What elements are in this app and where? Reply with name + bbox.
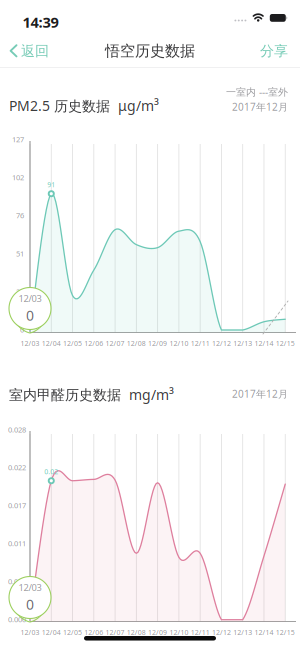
button[interactable]: 返回 xyxy=(0,34,57,68)
staticText: 一室内 ---室外 xyxy=(226,85,288,99)
staticText: 12/07 xyxy=(106,627,125,637)
staticText: 12/08 xyxy=(127,627,146,637)
staticText: 12/06 xyxy=(84,338,103,348)
staticText: 室内甲醛历史数据 mg/m³ xyxy=(9,385,174,404)
staticText: 悟空历史数据 xyxy=(105,41,195,60)
staticText: 0 xyxy=(26,595,34,614)
staticText: 12/14 xyxy=(254,627,273,637)
staticText: 12/05 xyxy=(63,627,82,637)
staticText: 分享 xyxy=(260,42,288,60)
staticText: 12/14 xyxy=(254,338,273,348)
staticText: 0.028 xyxy=(8,424,26,435)
staticText: 25 xyxy=(16,286,24,297)
staticText: 12/08 xyxy=(127,338,146,348)
staticText: 12/15 xyxy=(276,627,295,637)
staticText: 0.000 xyxy=(8,614,26,624)
staticText: 12/03 xyxy=(20,338,39,348)
staticText: 12/13 xyxy=(233,627,252,637)
staticText: 12/10 xyxy=(169,627,188,637)
staticText: 2017年12月 xyxy=(232,387,288,401)
staticText: 91 xyxy=(47,180,55,189)
staticText: 12/03 xyxy=(18,292,41,305)
staticText: 12/12 xyxy=(212,627,231,637)
staticText: 0.011 xyxy=(8,538,26,548)
staticText: 12/10 xyxy=(169,338,188,348)
staticText: 12/04 xyxy=(42,627,61,637)
staticText: 12/05 xyxy=(63,338,82,348)
staticText: 0.02 xyxy=(44,467,58,476)
staticText: 0.017 xyxy=(8,500,26,510)
staticText: 51 xyxy=(16,248,24,259)
staticText: 0 xyxy=(26,306,34,325)
staticText: 12/03 xyxy=(20,627,39,637)
staticText: 12/15 xyxy=(276,338,295,348)
staticText: 返回 xyxy=(21,42,49,60)
staticText: 12/07 xyxy=(106,338,125,348)
staticText: 12/04 xyxy=(42,338,61,348)
staticText: PM2.5 历史数据 μg/m³ xyxy=(9,96,159,115)
staticText: 12/03 xyxy=(18,581,41,594)
staticText: 0.022 xyxy=(8,462,26,473)
staticText: 12/11 xyxy=(191,627,210,637)
staticText: 12/11 xyxy=(191,338,210,348)
staticText: 102 xyxy=(12,172,24,182)
staticText: 0 xyxy=(20,324,24,335)
staticText: 12/12 xyxy=(212,338,231,348)
staticText: 127 xyxy=(12,134,24,144)
staticText: 12/06 xyxy=(84,627,103,637)
staticText: 2017年12月 xyxy=(232,100,288,114)
staticText: 12/13 xyxy=(233,338,252,348)
staticText: 14:39 xyxy=(22,12,58,32)
staticText: 0.006 xyxy=(8,576,26,586)
staticText: 76 xyxy=(16,210,24,221)
staticText: 12/09 xyxy=(148,338,167,348)
staticText: 12/09 xyxy=(148,627,167,637)
button[interactable]: 分享 xyxy=(248,34,300,68)
